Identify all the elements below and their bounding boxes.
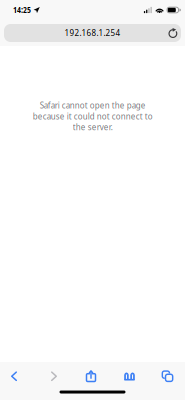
button[interactable]: Share [77,363,104,389]
staticText: 14:25 [13,5,31,15]
button[interactable]: Back [0,363,27,389]
button[interactable]: Bookmarks [116,363,143,389]
button[interactable]: Reload [162,24,181,42]
button[interactable]: Tabs [154,363,181,389]
staticText: Safari cannot open the page because it c… [32,100,152,133]
button[interactable]: Forward [40,363,67,389]
staticText: 192.168.1.254 [64,28,120,38]
